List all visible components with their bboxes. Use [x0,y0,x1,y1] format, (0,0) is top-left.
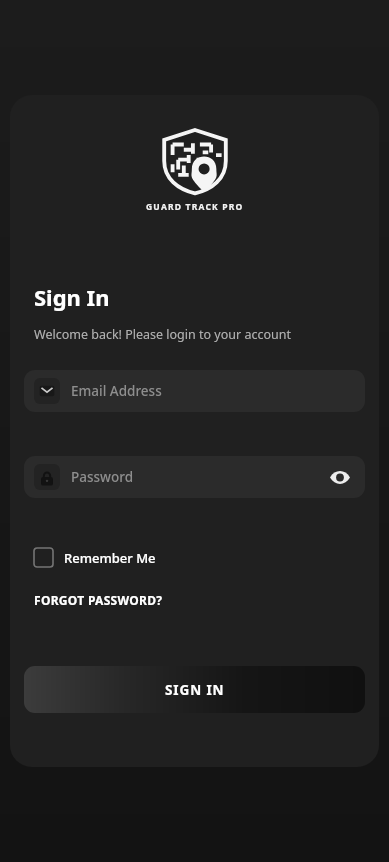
button[interactable]: Email address field [24,370,365,412]
staticText: Welcome back! Please login to your accou… [34,326,291,343]
button[interactable]: SIGN IN [24,666,365,713]
button[interactable]: Remember Me [34,548,156,567]
staticText: Remember Me [64,549,156,567]
staticText: SIGN IN [165,681,225,699]
staticText: Sign In [34,282,110,312]
staticText: FORGOT PASSWORD? [34,592,163,608]
button[interactable]: Show password [327,464,353,490]
button[interactable]: FORGOT PASSWORD? [34,592,163,608]
staticText: Email Address [71,382,162,400]
staticText: Password [71,468,134,486]
button[interactable]: Password field [24,456,365,498]
staticText: GUARD TRACK PRO [146,201,244,213]
